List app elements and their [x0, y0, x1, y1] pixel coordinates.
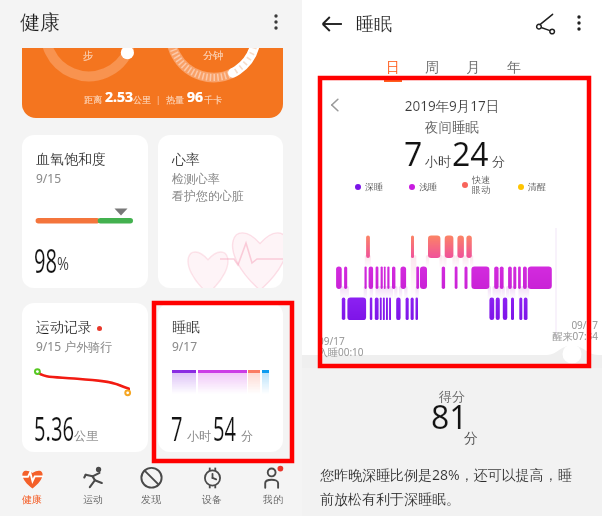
staticText: 发现	[141, 493, 161, 506]
staticText: 分	[241, 428, 253, 443]
button[interactable]: 设备	[182, 466, 242, 510]
staticText: 您昨晚深睡比例是28%，还可以提高，睡前放松有利于深睡眠。	[320, 465, 585, 508]
staticText: 周	[425, 59, 439, 77]
staticText: 分	[492, 153, 505, 169]
staticText: 9/17	[172, 338, 198, 354]
staticText: 年	[507, 59, 521, 77]
staticText: 心率	[172, 151, 200, 169]
staticText: 分钟	[203, 49, 223, 62]
staticText: 24	[452, 132, 489, 176]
button[interactable]: 运动	[63, 466, 123, 510]
button[interactable]: 健康	[2, 466, 62, 510]
button[interactable]: 月	[459, 59, 487, 82]
staticText: 健康	[20, 10, 60, 35]
button[interactable]: 步	[22, 48, 283, 118]
button[interactable]: 我的	[243, 466, 303, 510]
button[interactable]: 周	[418, 59, 446, 82]
button[interactable]: 年	[500, 59, 528, 82]
button[interactable]: 发现	[121, 466, 181, 510]
staticText: 千卡	[204, 94, 222, 105]
button[interactable]: Back	[316, 8, 348, 40]
staticText: 看护您的心脏	[172, 188, 244, 203]
staticText: 5.36	[34, 407, 74, 451]
staticText: 09/17 入睡00:10	[318, 334, 364, 359]
staticText: 浅睡	[419, 181, 437, 192]
staticText: 7	[171, 407, 183, 451]
staticText: 9/15	[36, 170, 62, 186]
staticText: 清醒	[528, 181, 546, 192]
staticText: 运动记录	[36, 319, 92, 337]
button[interactable]: Share	[530, 8, 562, 40]
staticText: 睡眠	[356, 13, 392, 36]
button[interactable]: 日	[379, 59, 407, 82]
staticText: 健康	[22, 493, 42, 506]
staticText: 81	[431, 395, 468, 439]
staticText: 2.53	[105, 87, 133, 106]
staticText: 公里	[133, 94, 151, 105]
button[interactable]: 血氧饱和度	[22, 135, 148, 288]
staticText: 09/17 醒来07:34	[552, 318, 598, 343]
staticText: 小时	[425, 153, 451, 169]
staticText: 小时	[187, 428, 211, 443]
staticText: 96	[187, 87, 204, 106]
staticText: 54	[213, 407, 236, 451]
staticText: 月	[466, 59, 480, 77]
staticText: 9/15 户外骑行	[36, 338, 113, 354]
staticText: 分	[464, 430, 478, 448]
staticText: 7	[404, 132, 423, 176]
button[interactable]: 运动记录	[22, 303, 148, 452]
button[interactable]: 睡眠	[158, 303, 283, 452]
staticText: 步	[83, 49, 93, 62]
staticText: %	[57, 251, 69, 276]
button[interactable]: More options	[262, 8, 290, 36]
staticText: |	[151, 93, 166, 105]
staticText: 公里	[74, 428, 98, 443]
staticText: 我的	[263, 493, 283, 506]
staticText: 检测心率	[172, 171, 220, 186]
staticText: 98	[34, 239, 57, 283]
staticText: 运动	[83, 493, 103, 506]
button[interactable]: 心率	[158, 135, 283, 288]
staticText: 睡眠	[172, 319, 200, 337]
button[interactable]: 健康	[20, 10, 60, 35]
staticText: 日	[386, 59, 400, 77]
staticText: 热量	[166, 93, 187, 105]
staticText: 深睡	[365, 181, 383, 192]
button[interactable]: More options	[564, 8, 594, 38]
staticText: 2019年9月17日	[302, 97, 602, 115]
staticText: 快速 眼动	[472, 174, 490, 196]
staticText: 距离	[84, 93, 105, 105]
staticText: 夜间睡眠	[302, 119, 602, 136]
staticText: 得分	[302, 388, 602, 404]
staticText: 血氧饱和度	[36, 151, 106, 169]
staticText: 设备	[202, 493, 222, 506]
